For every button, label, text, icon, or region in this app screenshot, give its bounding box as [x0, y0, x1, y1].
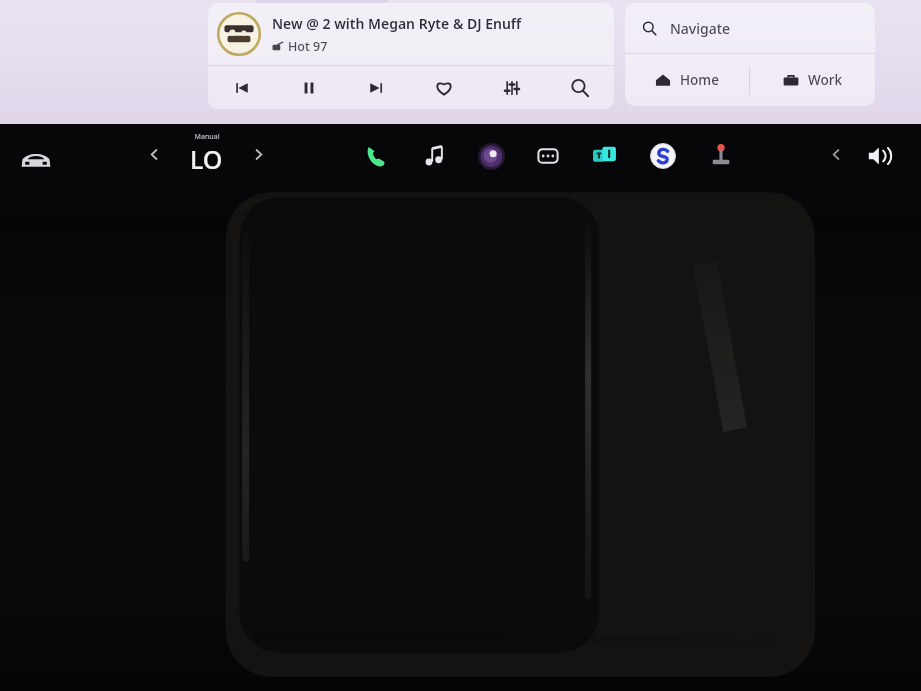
button[interactable]: Vehicle	[14, 138, 58, 182]
button[interactable]: Volume	[860, 136, 900, 176]
button[interactable]: Previous	[208, 66, 275, 109]
other: Decrease temperature	[144, 144, 164, 164]
button[interactable]: App	[583, 134, 627, 178]
button[interactable]: Phone	[354, 134, 398, 178]
button[interactable]: Skype	[641, 134, 685, 178]
button[interactable]: Navigate	[641, 3, 875, 53]
button[interactable]: Home	[625, 54, 749, 106]
button[interactable]: Pause	[275, 66, 342, 109]
other: Increase temperature	[248, 144, 268, 164]
staticText: Navigate	[670, 19, 731, 38]
staticText: Manual	[194, 132, 220, 142]
staticText: LO	[190, 142, 223, 176]
button[interactable]: Equalizer	[478, 66, 546, 109]
button[interactable]: Work	[750, 54, 875, 106]
staticText: New @ 2 with Megan Ryte & DJ Enuff	[272, 14, 522, 33]
staticText: Hot 97	[288, 38, 328, 55]
button[interactable]: Decrease temperature	[144, 128, 268, 180]
button[interactable]: Gear	[699, 134, 743, 178]
button[interactable]: Favorite	[410, 66, 478, 109]
button[interactable]: New @ 2 with Megan Ryte & DJ Enuff	[208, 3, 614, 109]
staticText: Work	[808, 71, 842, 89]
button[interactable]: Previous page	[824, 142, 848, 166]
button[interactable]: Assistant	[469, 134, 513, 178]
button[interactable]: Music	[412, 134, 456, 178]
button[interactable]: Search	[546, 66, 614, 109]
button[interactable]: Next	[342, 66, 410, 109]
button[interactable]: More apps	[526, 134, 570, 178]
staticText: Home	[680, 71, 719, 89]
